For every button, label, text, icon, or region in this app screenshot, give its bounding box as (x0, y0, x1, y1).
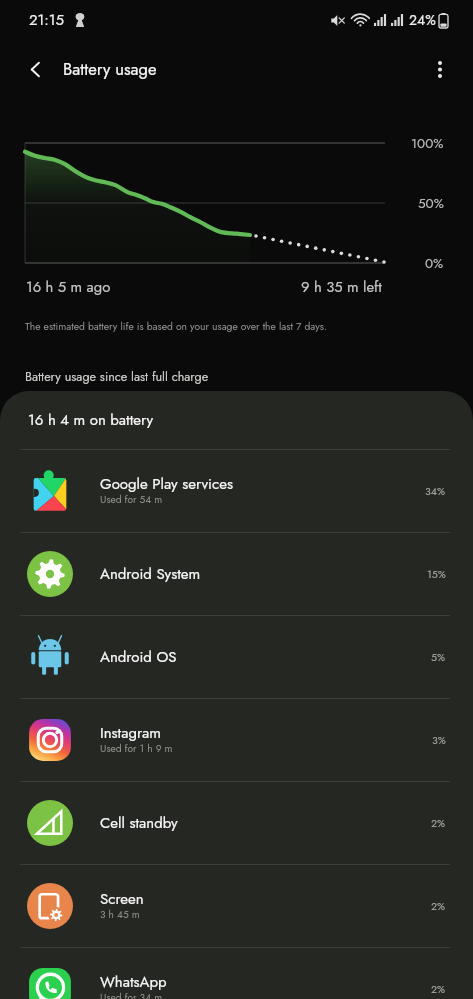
staticText: 2% (431, 816, 446, 831)
button[interactable]: WhatsApp (0, 948, 473, 999)
staticText: 34% (425, 484, 446, 499)
staticText: 5% (431, 650, 446, 665)
staticText: 3 h 45 m (100, 907, 140, 922)
staticText: Used for 54 m (100, 492, 163, 507)
button[interactable]: More options (418, 47, 462, 91)
staticText: 16 h 4 m on battery (28, 409, 154, 431)
staticText: 2% (431, 982, 446, 997)
staticText: Screen (100, 888, 144, 910)
staticText: Instagram (100, 722, 162, 744)
staticText: 9 h 35 m left (301, 276, 382, 297)
button[interactable]: Screen (0, 865, 473, 947)
staticText: Used for 34 m (100, 990, 163, 999)
button[interactable]: Navigate up (13, 47, 57, 91)
staticText: 16 h 5 m ago (26, 276, 111, 297)
button[interactable]: Android System (0, 533, 473, 615)
staticText: 100% (411, 134, 444, 154)
staticText: Battery usage (63, 57, 157, 81)
staticText: 21:15 (29, 9, 64, 31)
button[interactable]: Google Play services (0, 450, 473, 532)
staticText: Used for 1 h 9 m (100, 741, 173, 756)
staticText: 24% (409, 10, 436, 30)
staticText: Android OS (100, 646, 177, 668)
staticText: 0% (425, 254, 444, 274)
staticText: 50% (418, 194, 444, 214)
staticText: Android System (100, 563, 201, 585)
staticText: The estimated battery life is based on y… (25, 319, 327, 334)
staticText: Google Play services (100, 473, 233, 495)
staticText: 3% (432, 733, 446, 748)
staticText: Cell standby (100, 812, 178, 834)
staticText: WhatsApp (100, 971, 167, 993)
button[interactable]: Instagram (0, 699, 473, 781)
button[interactable]: Android OS (0, 616, 473, 698)
button[interactable]: Cell standby (0, 782, 473, 864)
staticText: 2% (431, 899, 446, 914)
staticText: 15% (427, 567, 446, 582)
staticText: Battery usage since last full charge (25, 368, 209, 386)
